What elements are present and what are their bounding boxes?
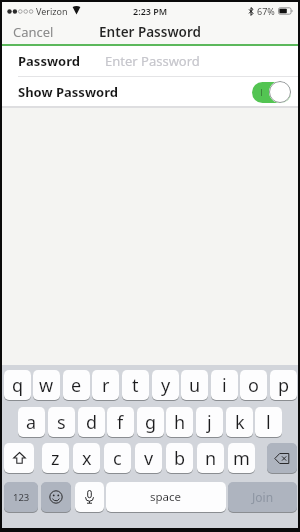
button[interactable]: t [122,370,149,400]
staticText: a [26,410,37,435]
button[interactable]: e [63,370,90,400]
button[interactable]: v [135,443,162,473]
staticText: Cancel [13,23,54,41]
button[interactable]: j [196,407,223,437]
staticText: w [39,373,54,398]
button[interactable]: m [228,443,255,473]
button[interactable]: space [106,482,226,512]
button[interactable]: q [4,370,31,400]
staticText: Show Password [18,83,118,101]
staticText: j [207,410,212,435]
staticText: r [102,373,110,398]
staticText: x [82,446,92,471]
staticText: Password [18,52,80,70]
button[interactable]: w [33,370,60,400]
staticText: u [189,373,201,398]
button[interactable]: s [48,407,75,437]
button[interactable]: c [104,443,131,473]
button[interactable]: z [42,443,69,473]
button[interactable]: Password [2,46,298,76]
button[interactable]: y [152,370,179,400]
staticText: 123 [13,491,30,504]
button[interactable]: h [166,407,193,437]
button[interactable]: o [240,370,267,400]
button[interactable]: 123 [4,482,38,512]
button[interactable] [267,443,297,473]
button[interactable]: u [181,370,208,400]
button[interactable]: Cancel [13,23,54,41]
staticText: q [12,373,24,398]
button[interactable]: n [197,443,224,473]
button[interactable] [251,81,291,103]
staticText: 67% [257,5,275,17]
button[interactable]: Join [228,482,297,512]
button[interactable]: k [226,407,253,437]
staticText: 2:23 PM [133,5,168,17]
button[interactable]: Show Password [2,77,298,106]
button[interactable]: l [255,407,282,437]
button[interactable] [75,482,104,512]
staticText: space [150,489,182,505]
button[interactable] [41,482,71,512]
staticText: o [248,373,259,398]
staticText: p [278,373,290,398]
button[interactable]: x [73,443,100,473]
button[interactable]: g [137,407,164,437]
button[interactable]: r [92,370,119,400]
staticText: n [205,446,217,471]
staticText: Enter Password [99,23,201,41]
staticText: Join [252,489,274,505]
staticText: k [235,410,245,435]
button[interactable]: b [166,443,193,473]
staticText: s [57,410,66,435]
button[interactable]: a [18,407,45,437]
button[interactable]: i [211,370,238,400]
staticText: f [117,410,124,435]
staticText: i [222,373,227,398]
staticText: h [174,410,186,435]
button[interactable]: f [107,407,134,437]
staticText: v [144,446,154,471]
staticText: t [132,373,139,398]
staticText: d [86,410,98,435]
staticText: Enter Password [105,52,200,70]
staticText: l [266,410,271,435]
staticText: m [233,446,250,471]
staticText: z [51,446,60,471]
staticText: Verizon [36,5,68,17]
staticText: e [71,373,82,398]
button[interactable] [4,443,34,473]
staticText: c [113,446,122,471]
staticText: y [161,373,171,398]
staticText: g [145,410,157,435]
button[interactable]: p [270,370,297,400]
staticText: b [174,446,186,471]
button[interactable]: d [78,407,105,437]
